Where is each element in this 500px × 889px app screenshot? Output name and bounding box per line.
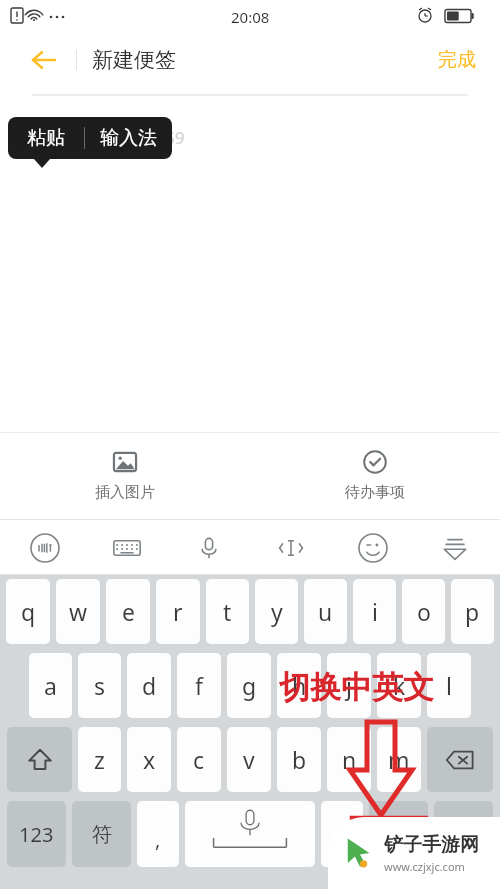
staticText: t: [223, 596, 232, 627]
staticText: 123: [19, 821, 54, 848]
button[interactable]: l: [427, 653, 471, 718]
button[interactable]: n: [327, 727, 371, 792]
staticText: h: [292, 670, 307, 701]
staticText: a: [44, 670, 57, 701]
button[interactable]: 123: [7, 801, 66, 867]
staticText: ,: [155, 826, 161, 853]
staticText: d: [142, 670, 157, 701]
staticText: j: [346, 670, 352, 701]
button[interactable]: Keyboard: [86, 520, 168, 575]
staticText: 铲子手游网: [384, 833, 479, 857]
staticText: q: [21, 596, 36, 627]
staticText: e: [122, 596, 135, 627]
staticText: p: [465, 596, 480, 627]
staticText: c: [193, 744, 205, 775]
staticText: k: [393, 670, 406, 701]
button[interactable]: o: [402, 579, 445, 644]
staticText: x: [143, 744, 156, 775]
button[interactable]: Hide keyboard: [414, 520, 496, 575]
staticText: 完成: [438, 48, 476, 72]
button[interactable]: v: [227, 727, 271, 792]
button[interactable]: s: [78, 653, 121, 718]
button[interactable]: .: [321, 801, 363, 867]
button[interactable]: q: [6, 579, 50, 644]
button[interactable]: a: [29, 653, 72, 718]
staticText: l: [446, 670, 452, 701]
button[interactable]: w: [56, 579, 100, 644]
staticText: 2019/9/22 19:59: [56, 126, 185, 149]
button[interactable]: r: [156, 579, 200, 644]
button[interactable]: p: [451, 579, 494, 644]
staticText: r: [173, 596, 183, 627]
button[interactable]: Emoji: [332, 520, 414, 575]
button[interactable]: 待办事项: [250, 432, 500, 520]
button[interactable]: u: [304, 579, 347, 644]
staticText: 粘贴: [27, 126, 65, 150]
staticText: i: [372, 596, 378, 627]
staticText: 待办事项: [345, 483, 405, 502]
staticText: z: [94, 744, 105, 775]
button[interactable]: Input method: [4, 520, 86, 575]
staticText: y: [271, 596, 283, 627]
staticText: 新建便签: [92, 47, 176, 73]
button[interactable]: Space: [185, 801, 315, 867]
staticText: u: [318, 596, 333, 627]
button[interactable]: 符: [72, 801, 131, 867]
button[interactable]: i: [353, 579, 396, 644]
staticText: g: [242, 670, 257, 701]
staticText: m: [388, 744, 410, 775]
staticText: 切换中英文: [279, 668, 434, 707]
button[interactable]: y: [255, 579, 298, 644]
staticText: w: [69, 596, 88, 627]
staticText: 输入法: [100, 126, 157, 150]
button[interactable]: h: [277, 653, 321, 718]
button[interactable]: b: [277, 727, 321, 792]
staticText: n: [342, 744, 357, 775]
button[interactable]: t: [206, 579, 249, 644]
staticText: o: [417, 596, 431, 627]
button[interactable]: Voice input: [168, 520, 250, 575]
staticText: f: [195, 670, 203, 701]
button[interactable]: m: [377, 727, 421, 792]
button[interactable]: [434, 801, 493, 867]
staticText: b: [292, 744, 307, 775]
button[interactable]: j: [327, 653, 371, 718]
button[interactable]: Back: [22, 38, 66, 82]
button[interactable]: 粘贴: [8, 117, 84, 159]
button[interactable]: e: [106, 579, 150, 644]
button[interactable]: f: [177, 653, 221, 718]
button[interactable]: d: [127, 653, 171, 718]
button[interactable]: 完成: [430, 42, 484, 78]
staticText: s: [94, 670, 106, 701]
staticText: www.czjxjc.com: [384, 859, 465, 874]
button[interactable]: g: [227, 653, 271, 718]
button[interactable]: Backspace: [427, 727, 493, 792]
button[interactable]: k: [377, 653, 421, 718]
staticText: 符: [92, 822, 112, 847]
button[interactable]: x: [127, 727, 171, 792]
button[interactable]: Shift: [7, 727, 72, 792]
button[interactable]: 输入法: [85, 117, 172, 159]
button[interactable]: Move cursor: [250, 520, 332, 575]
staticText: v: [243, 744, 255, 775]
staticText: 20:08: [231, 7, 270, 27]
button[interactable]: 英: [369, 801, 428, 867]
staticText: 英: [389, 822, 409, 847]
button[interactable]: z: [78, 727, 121, 792]
button[interactable]: c: [177, 727, 221, 792]
button[interactable]: ,: [137, 801, 179, 867]
staticText: 插入图片: [95, 483, 155, 502]
button[interactable]: 插入图片: [0, 432, 250, 520]
